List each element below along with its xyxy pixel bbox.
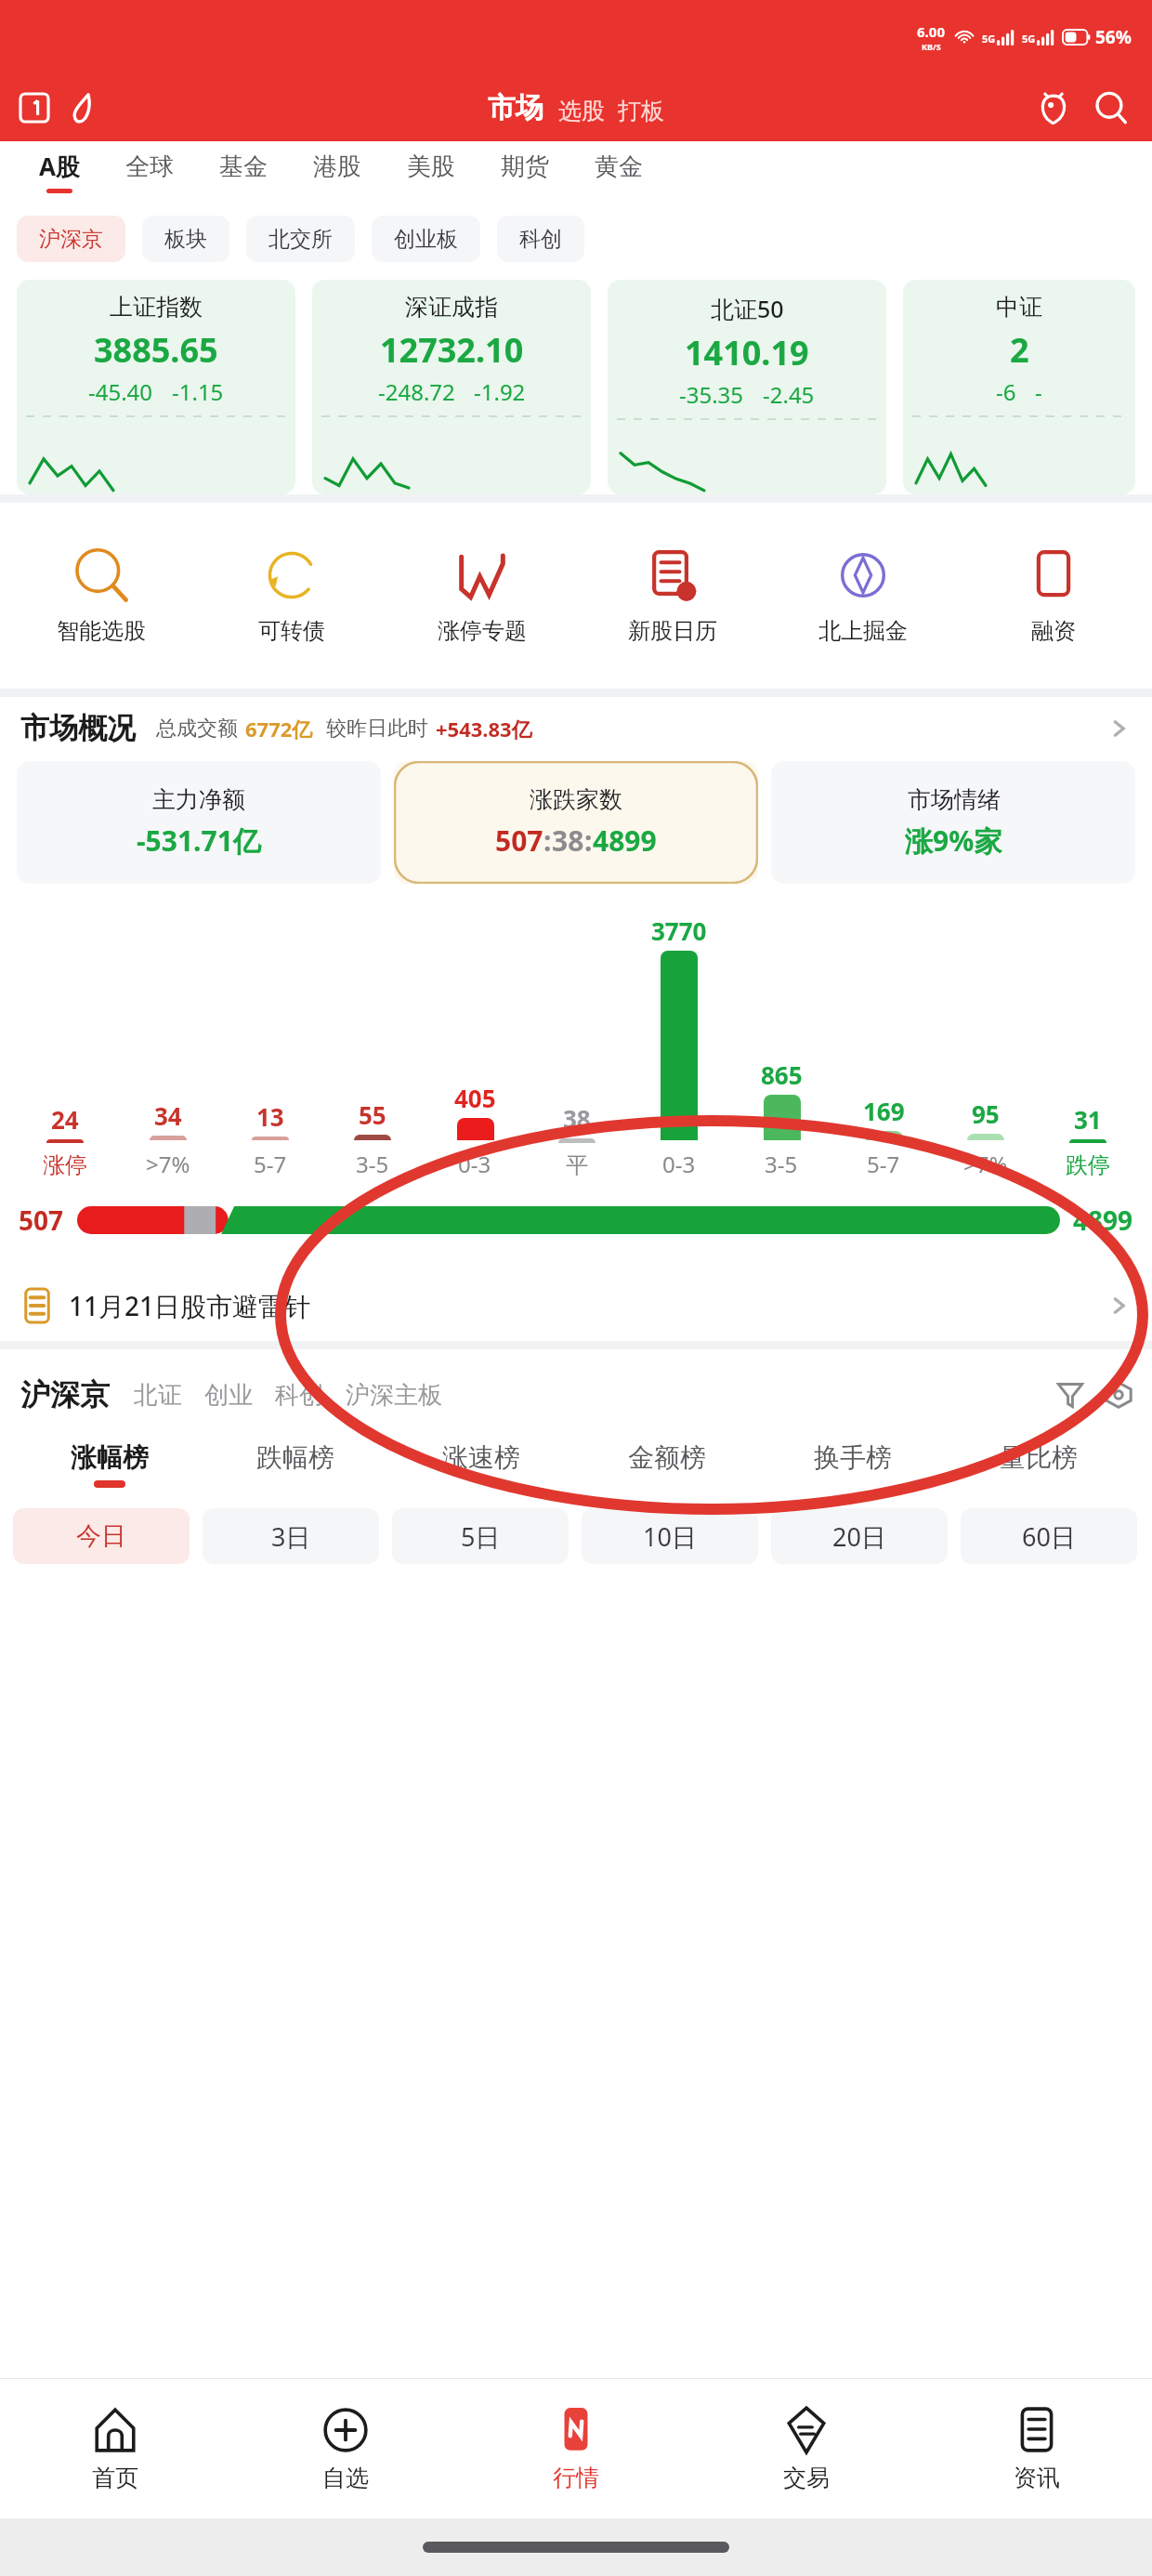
staticText: 上证指数 <box>110 293 203 322</box>
button[interactable]: 打板 <box>618 97 664 125</box>
staticText: -1.92 <box>474 376 526 407</box>
button[interactable]: 量比榜 <box>946 1429 1132 1500</box>
button[interactable]: 资讯 <box>922 2379 1152 2518</box>
staticText: 11月21日股市避雷针 <box>69 1288 311 1323</box>
staticText: 换手榜 <box>814 1441 892 1474</box>
staticText: -531.71亿 <box>137 821 261 860</box>
button[interactable]: 交易 <box>691 2379 922 2518</box>
button[interactable]: 中证 <box>903 280 1135 494</box>
staticText: 可转债 <box>258 617 325 645</box>
staticText: -45.40 <box>88 376 153 407</box>
button[interactable]: 20日 <box>771 1508 948 1564</box>
button[interactable]: 智能选股 <box>6 546 196 645</box>
staticText: 自选 <box>322 2464 369 2492</box>
button[interactable]: 今日 <box>13 1508 190 1564</box>
button[interactable]: 融资 <box>958 546 1148 645</box>
staticText: 美股 <box>407 151 455 182</box>
button[interactable]: 沪深京 <box>20 1376 110 1413</box>
staticText: 深证成指 <box>405 293 498 322</box>
button[interactable]: 期货 <box>478 141 571 202</box>
button[interactable]: 主力净额 <box>17 761 381 884</box>
button[interactable]: 创业 <box>204 1380 253 1411</box>
button[interactable]: 金额榜 <box>574 1429 760 1500</box>
button[interactable]: 沪深主板 <box>346 1380 442 1411</box>
staticText: 865 <box>761 1058 803 1091</box>
staticText: 1410.19 <box>685 330 809 375</box>
button[interactable]: 涨跌家数 <box>394 761 758 884</box>
staticText: 13 <box>256 1100 284 1133</box>
button[interactable]: 涨停专题 <box>386 546 577 645</box>
button[interactable]: 全球 <box>102 141 196 202</box>
button[interactable]: 行情 <box>461 2379 691 2518</box>
staticText: 95 <box>972 1097 1000 1130</box>
staticText: 打板 <box>618 97 664 125</box>
staticText: 市场 <box>488 90 543 125</box>
staticText: 北上掘金 <box>818 617 908 645</box>
staticText: -1.15 <box>172 376 224 407</box>
button[interactable]: 基金 <box>196 141 290 202</box>
button[interactable]: 市场概况 <box>20 710 1132 746</box>
staticText: 首页 <box>92 2464 138 2492</box>
button[interactable]: 首页 <box>0 2379 230 2518</box>
button[interactable]: 市场情绪 <box>771 761 1135 884</box>
staticText: 3770 <box>651 914 707 947</box>
button[interactable]: 港股 <box>290 141 384 202</box>
staticText: 新股日历 <box>628 617 717 645</box>
button[interactable]: 深证成指 <box>312 280 591 494</box>
button[interactable]: 北交所 <box>246 216 355 262</box>
button[interactable]: Night mode <box>63 89 100 126</box>
button[interactable]: 科创 <box>275 1380 323 1411</box>
staticText: 0-3 <box>662 1149 696 1179</box>
button[interactable]: 上证指数 <box>17 280 295 494</box>
button[interactable]: 可转债 <box>196 546 386 645</box>
button[interactable]: Assistant <box>1031 85 1076 130</box>
button[interactable]: 黄金 <box>571 141 665 202</box>
staticText: 12732.10 <box>380 327 524 373</box>
staticText: 4899 <box>593 821 657 860</box>
staticText: -2.45 <box>763 379 815 410</box>
button[interactable]: 跌幅榜 <box>203 1429 388 1500</box>
button[interactable]: Settings <box>1098 1374 1139 1415</box>
staticText: 3日 <box>271 1519 311 1554</box>
staticText: 6.00 <box>917 22 945 41</box>
button[interactable]: 涨幅榜 <box>17 1429 203 1500</box>
staticText: 507 <box>19 1203 64 1238</box>
button[interactable]: 11月21日股市避雷针 <box>20 1270 1132 1341</box>
staticText: 10日 <box>643 1519 697 1554</box>
staticText: 港股 <box>313 151 361 182</box>
staticText: 6772亿 <box>245 715 313 743</box>
staticText: 总成交额 <box>156 716 238 742</box>
button[interactable]: 3日 <box>203 1508 379 1564</box>
button[interactable]: 北证 <box>134 1380 182 1411</box>
button[interactable]: 市场 <box>488 90 543 125</box>
staticText: 4899 <box>1073 1203 1133 1238</box>
staticText: 沪深京 <box>39 226 103 253</box>
button[interactable]: 5日 <box>392 1508 569 1564</box>
button[interactable]: A股 <box>17 141 102 202</box>
button[interactable]: Search <box>1089 85 1133 130</box>
button[interactable]: 科创 <box>497 216 584 262</box>
staticText: 平 <box>566 1151 588 1179</box>
staticText: 期货 <box>501 151 549 182</box>
button[interactable]: 换手榜 <box>760 1429 946 1500</box>
button[interactable]: 10日 <box>582 1508 758 1564</box>
button[interactable]: 北上掘金 <box>767 546 958 645</box>
staticText: 板块 <box>164 226 207 253</box>
button[interactable]: 美股 <box>384 141 478 202</box>
button[interactable]: 新股日历 <box>577 546 767 645</box>
button[interactable]: 创业板 <box>372 216 480 262</box>
button[interactable]: 北证50 <box>608 280 886 494</box>
staticText: 沪深主板 <box>346 1380 442 1411</box>
button[interactable]: 涨速榜 <box>388 1429 574 1500</box>
button[interactable]: 板块 <box>142 216 229 262</box>
button[interactable]: 60日 <box>961 1508 1137 1564</box>
button[interactable]: Filter <box>1050 1374 1091 1415</box>
button[interactable]: 自选 <box>230 2379 461 2518</box>
staticText: 3-5 <box>765 1149 798 1179</box>
staticText: 涨速榜 <box>442 1441 520 1474</box>
button[interactable]: 选股 <box>558 97 605 125</box>
button[interactable]: Switch account <box>17 90 52 125</box>
staticText: 市场情绪 <box>908 785 1001 814</box>
staticText: 跌幅榜 <box>256 1441 334 1474</box>
button[interactable]: 沪深京 <box>17 216 125 262</box>
